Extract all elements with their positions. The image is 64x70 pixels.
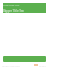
staticText: Bigger Title Tex (3, 9, 24, 13)
staticText: Small label here (3, 4, 20, 7)
staticText: brand (39, 64, 46, 67)
staticText: footer note text (2, 64, 20, 67)
button[interactable] (3, 56, 46, 62)
button[interactable]: Small label here (3, 3, 46, 13)
